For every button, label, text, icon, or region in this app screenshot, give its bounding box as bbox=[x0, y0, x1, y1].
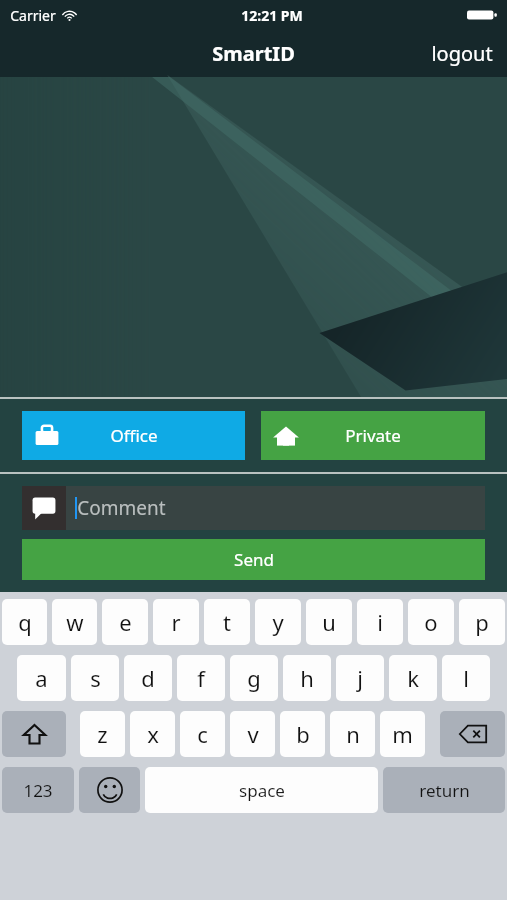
staticText: p bbox=[475, 607, 489, 637]
button[interactable]: b bbox=[280, 711, 325, 757]
staticText: y bbox=[272, 607, 284, 637]
staticText: i bbox=[377, 607, 383, 637]
button[interactable]: d bbox=[124, 655, 172, 701]
staticText: r bbox=[171, 607, 181, 637]
staticText: Send bbox=[234, 548, 274, 571]
staticText: f bbox=[197, 663, 205, 693]
staticText: 12:21 PM bbox=[241, 6, 303, 25]
staticText: Private bbox=[345, 424, 401, 447]
button[interactable]: t bbox=[204, 599, 250, 645]
staticText: d bbox=[141, 663, 155, 693]
staticText: g bbox=[247, 663, 261, 693]
staticText: s bbox=[90, 663, 101, 693]
button[interactable]: n bbox=[330, 711, 375, 757]
staticText: b bbox=[296, 719, 310, 749]
button[interactable]: u bbox=[306, 599, 352, 645]
button[interactable]: k bbox=[389, 655, 437, 701]
button[interactable]: g bbox=[230, 655, 278, 701]
button[interactable]: 123 bbox=[2, 767, 74, 813]
button[interactable]: m bbox=[380, 711, 425, 757]
button[interactable]: c bbox=[180, 711, 225, 757]
button[interactable]: logout bbox=[417, 32, 507, 75]
button[interactable]: Backspace bbox=[440, 711, 505, 757]
staticText: v bbox=[247, 719, 259, 749]
button[interactable]: e bbox=[102, 599, 148, 645]
button[interactable]: w bbox=[52, 599, 97, 645]
button[interactable]: z bbox=[80, 711, 125, 757]
button[interactable]: v bbox=[230, 711, 275, 757]
button[interactable]: return bbox=[383, 767, 505, 813]
staticText: logout bbox=[431, 40, 493, 67]
staticText: j bbox=[357, 663, 363, 693]
button[interactable]: r bbox=[153, 599, 199, 645]
staticText: u bbox=[322, 607, 336, 637]
staticText: q bbox=[18, 607, 32, 637]
staticText: w bbox=[66, 607, 84, 637]
staticText: z bbox=[97, 719, 108, 749]
staticText: Carrier bbox=[10, 6, 56, 25]
button[interactable]: Shift bbox=[2, 711, 66, 757]
button[interactable]: Comment bbox=[22, 486, 485, 530]
button[interactable]: j bbox=[336, 655, 384, 701]
button[interactable]: o bbox=[408, 599, 454, 645]
button[interactable]: p bbox=[459, 599, 505, 645]
button[interactable]: y bbox=[255, 599, 301, 645]
button[interactable]: i bbox=[357, 599, 403, 645]
staticText: h bbox=[300, 663, 314, 693]
staticText: e bbox=[119, 607, 132, 637]
staticText: a bbox=[35, 663, 48, 693]
button[interactable]: f bbox=[177, 655, 225, 701]
button[interactable]: Emoji bbox=[79, 767, 140, 813]
staticText: n bbox=[346, 719, 360, 749]
button[interactable]: a bbox=[17, 655, 66, 701]
button[interactable]: l bbox=[442, 655, 490, 701]
button[interactable]: space bbox=[145, 767, 378, 813]
staticText: Office bbox=[110, 424, 158, 447]
staticText: o bbox=[424, 607, 438, 637]
button[interactable]: q bbox=[2, 599, 47, 645]
staticText: k bbox=[407, 663, 419, 693]
staticText: c bbox=[197, 719, 208, 749]
button[interactable]: x bbox=[130, 711, 175, 757]
staticText: l bbox=[463, 663, 469, 693]
button[interactable]: h bbox=[283, 655, 331, 701]
staticText: 123 bbox=[23, 779, 53, 802]
button[interactable]: s bbox=[71, 655, 119, 701]
staticText: m bbox=[392, 719, 413, 749]
button[interactable]: Send bbox=[22, 539, 485, 580]
staticText: x bbox=[147, 719, 159, 749]
staticText: Comment bbox=[77, 495, 166, 521]
staticText: SmartID bbox=[212, 40, 295, 67]
staticText: space bbox=[239, 779, 285, 802]
staticText: t bbox=[223, 607, 231, 637]
staticText: return bbox=[419, 779, 470, 802]
button[interactable]: Private bbox=[261, 411, 485, 460]
button[interactable]: Office bbox=[22, 411, 245, 460]
